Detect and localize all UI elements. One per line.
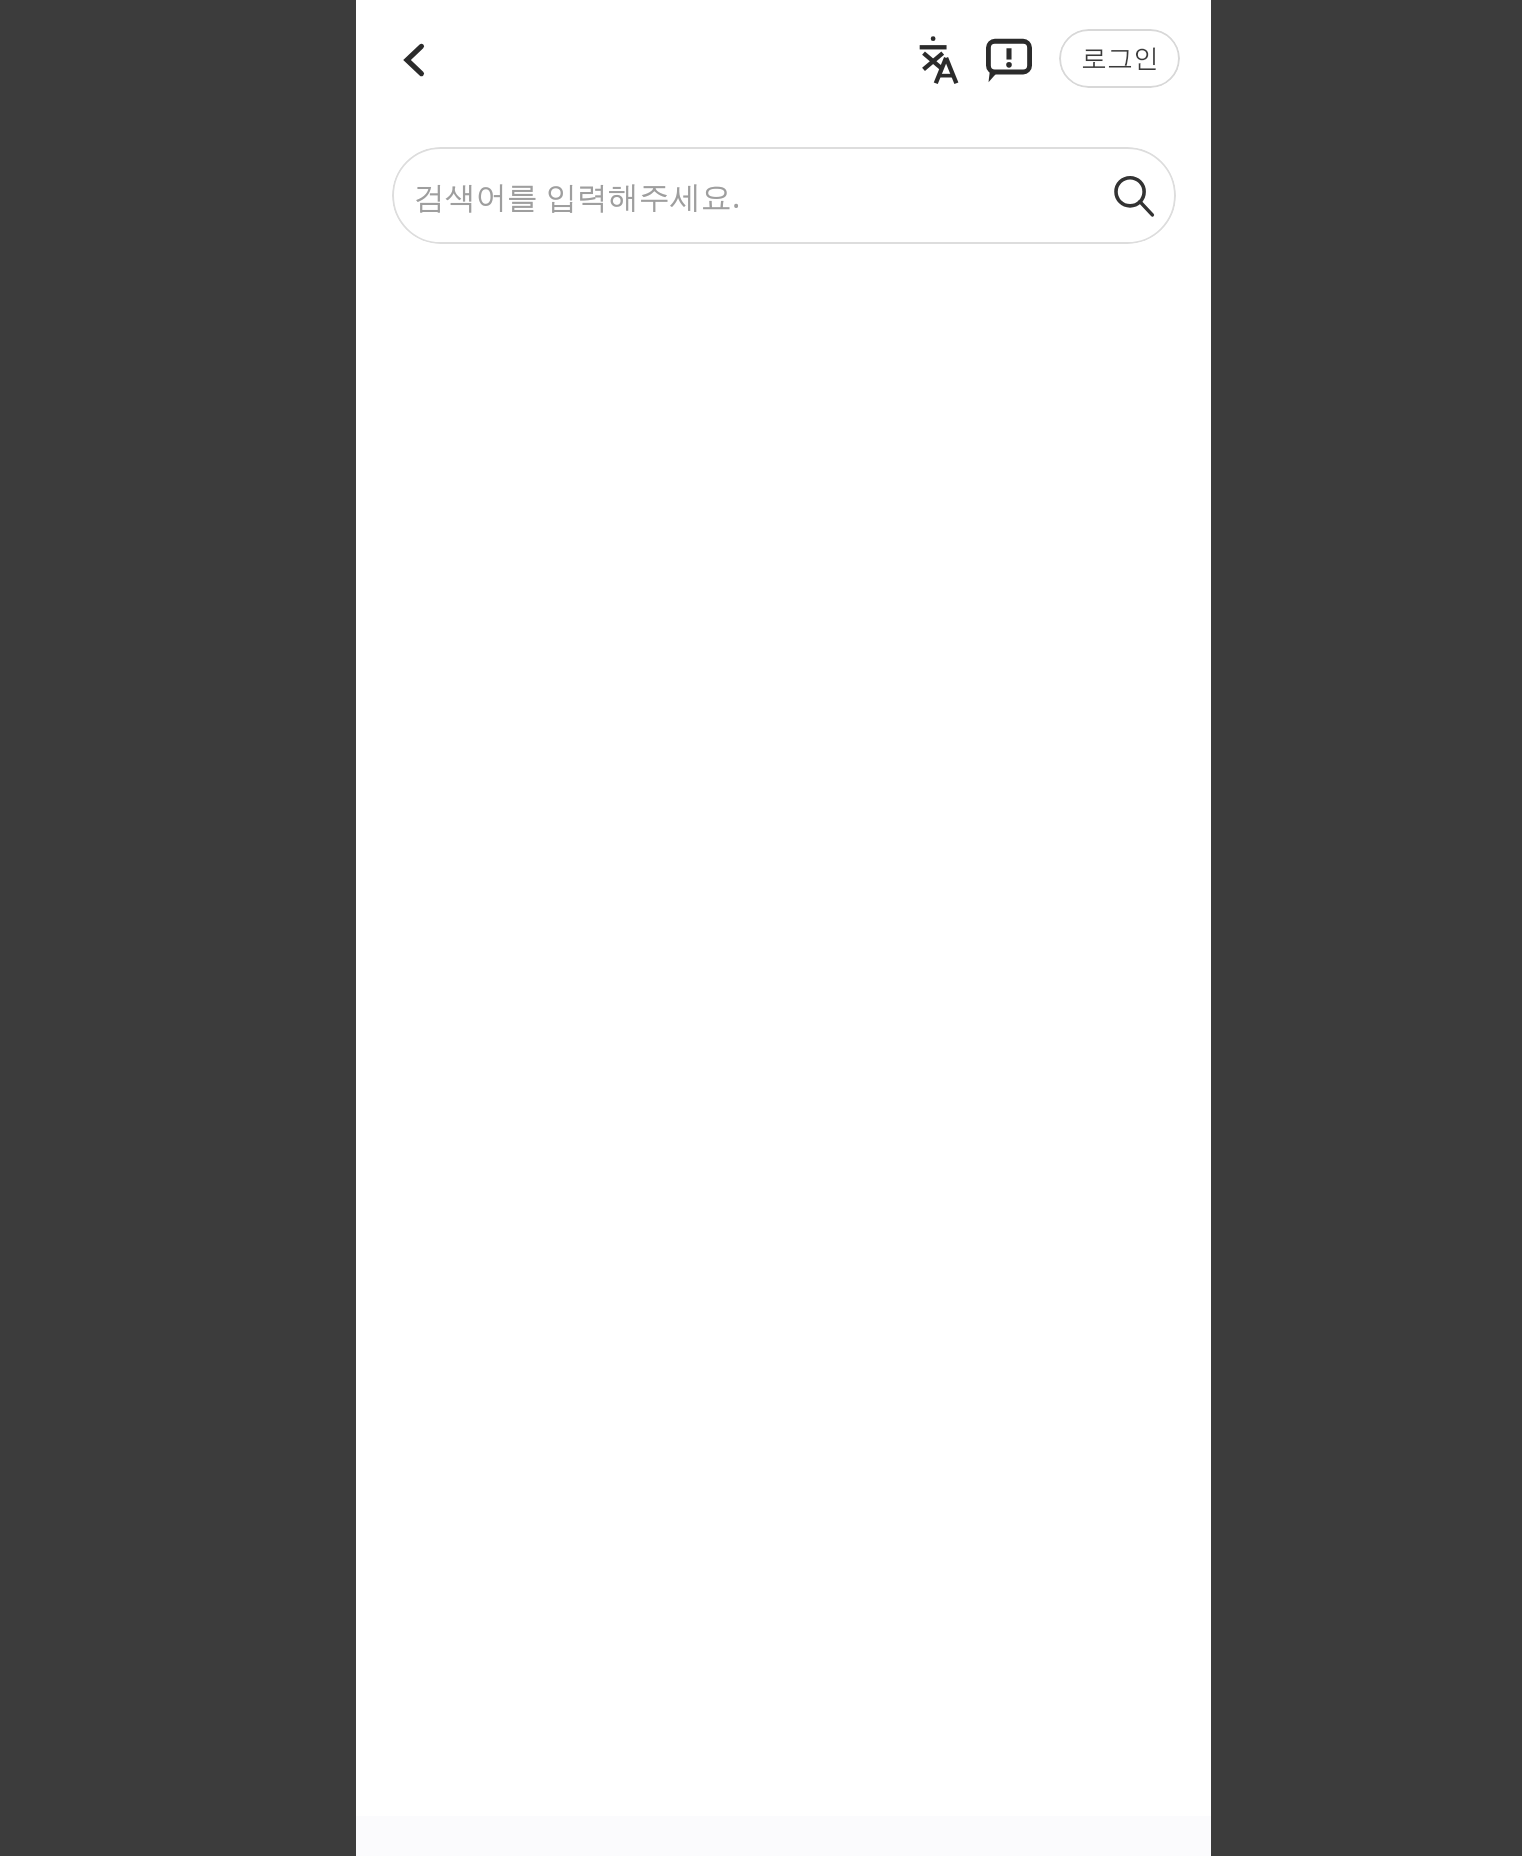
staticText: 로그인 bbox=[1081, 42, 1159, 75]
button[interactable]: Back bbox=[373, 18, 457, 102]
button[interactable]: Search bbox=[1102, 165, 1164, 227]
button[interactable]: Translate bbox=[900, 18, 984, 102]
button[interactable]: 검색어를 입력해주세요. bbox=[392, 147, 1176, 244]
button[interactable]: 로그인 bbox=[1059, 29, 1180, 88]
button[interactable]: Feedback bbox=[967, 18, 1051, 102]
staticText: 검색어를 입력해주세요. bbox=[414, 175, 741, 217]
